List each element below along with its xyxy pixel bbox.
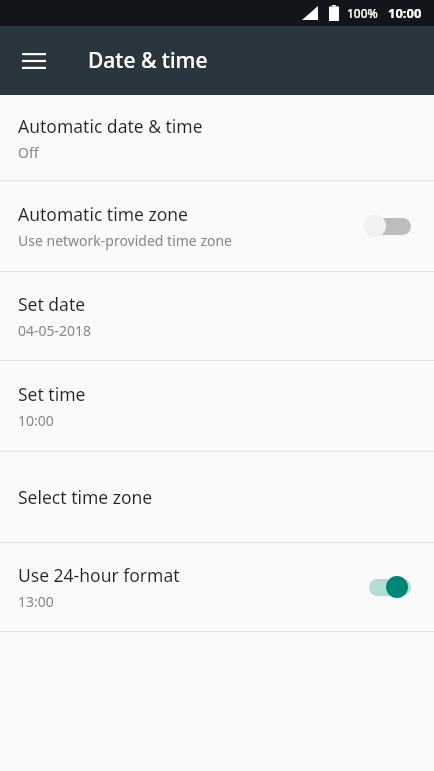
- button[interactable]: Toggle off: [364, 209, 416, 243]
- button[interactable]: Use 24-hour format: [0, 543, 434, 631]
- button[interactable]: Toggle on: [364, 570, 416, 604]
- staticText: 13:00: [18, 592, 54, 611]
- staticText: Automatic time zone: [18, 202, 188, 226]
- staticText: 10:00: [18, 411, 54, 430]
- button[interactable]: Set time: [0, 361, 434, 451]
- staticText: Automatic date & time: [18, 114, 203, 138]
- staticText: 04-05-2018: [18, 321, 92, 340]
- staticText: Set time: [18, 382, 86, 406]
- staticText: Set date: [18, 292, 86, 316]
- button[interactable]: Select time zone: [0, 452, 434, 542]
- staticText: Date & time: [88, 46, 208, 75]
- button[interactable]: Automatic time zone: [0, 181, 434, 271]
- staticText: Select time zone: [18, 485, 153, 509]
- button[interactable]: Open navigation menu: [10, 37, 58, 85]
- staticText: Off: [18, 143, 39, 162]
- staticText: 100%: [347, 5, 378, 21]
- staticText: Use 24-hour format: [18, 563, 180, 587]
- button[interactable]: Automatic date & time: [0, 95, 434, 180]
- staticText: Use network-provided time zone: [18, 231, 232, 250]
- button[interactable]: Set date: [0, 272, 434, 360]
- staticText: 10:00: [388, 4, 422, 22]
